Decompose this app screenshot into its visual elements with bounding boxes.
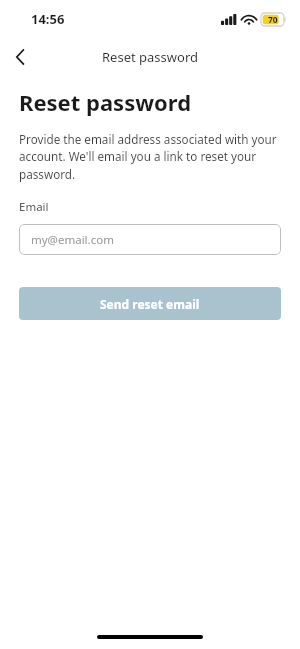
staticText: Provide the email address associated wit…: [19, 131, 283, 183]
staticText: Reset password: [102, 48, 198, 66]
button[interactable]: my@email.com: [19, 224, 281, 255]
staticText: Reset password: [19, 87, 192, 117]
staticText: Email: [19, 199, 49, 215]
staticText: my@email.com: [31, 232, 114, 248]
staticText: 14:56: [31, 10, 65, 28]
button[interactable]: Back: [7, 44, 33, 70]
staticText: 70: [268, 14, 278, 26]
button[interactable]: Send reset email: [19, 287, 281, 320]
staticText: Send reset email: [100, 296, 200, 312]
